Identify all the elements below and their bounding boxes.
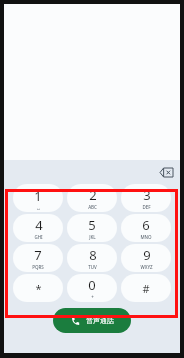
button[interactable]: 5 <box>67 214 117 242</box>
staticText: # <box>142 281 150 296</box>
staticText: 3 <box>143 186 151 204</box>
staticText: MNO <box>140 234 152 240</box>
staticText: WXYZ <box>140 264 153 270</box>
button[interactable]: 4 <box>13 214 63 242</box>
button[interactable]: 2 <box>67 184 117 212</box>
button[interactable]: 7 <box>13 244 63 272</box>
button[interactable]: 6 <box>121 214 171 242</box>
staticText: 1 <box>34 187 42 205</box>
staticText: 9 <box>143 246 151 264</box>
staticText: 6 <box>142 216 150 234</box>
staticText: + <box>91 294 94 300</box>
staticText: 4 <box>35 216 43 234</box>
staticText: TUV <box>88 264 97 270</box>
button[interactable]: # <box>121 274 171 302</box>
button[interactable]: 1 <box>13 184 63 212</box>
staticText: GHI <box>34 234 43 240</box>
staticText: 0 <box>88 276 96 294</box>
staticText: ␣ <box>37 205 40 210</box>
button[interactable]: 9 <box>121 244 171 272</box>
staticText: 8 <box>89 246 97 264</box>
staticText: 7 <box>34 246 42 264</box>
button[interactable]: * <box>13 274 63 302</box>
button[interactable]: 0 <box>67 274 117 302</box>
staticText: ABC <box>88 204 97 210</box>
staticText: PQRS <box>32 264 44 270</box>
staticText: DEF <box>142 204 151 210</box>
staticText: 音声通話 <box>86 316 114 325</box>
button[interactable]: 8 <box>67 244 117 272</box>
button[interactable]: Backspace <box>158 164 174 180</box>
staticText: JKL <box>89 234 96 240</box>
button[interactable]: 3 <box>121 184 171 212</box>
staticText: 5 <box>88 216 96 234</box>
staticText: 2 <box>89 186 97 204</box>
staticText: * <box>35 281 42 296</box>
button[interactable]: 音声通話 <box>53 308 131 333</box>
